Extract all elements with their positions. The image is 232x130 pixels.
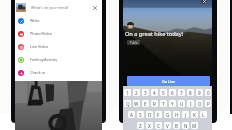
button[interactable]: H	[173, 111, 180, 118]
staticText: S	[139, 112, 142, 118]
staticText: B	[175, 123, 178, 129]
button[interactable]: 4	[151, 89, 158, 96]
staticText: H	[175, 112, 179, 118]
button[interactable]: P	[205, 100, 211, 107]
button[interactable]: V	[164, 122, 171, 129]
button[interactable]: Close	[89, 2, 100, 13]
button[interactable]: 3	[142, 89, 149, 96]
staticText: 1	[126, 90, 129, 96]
button[interactable]: G	[164, 111, 171, 118]
button[interactable]: 7	[178, 89, 185, 96]
staticText: D	[148, 112, 152, 118]
button[interactable]: S	[137, 111, 144, 118]
button[interactable]: N	[182, 122, 189, 129]
staticText: Q	[126, 101, 130, 107]
button[interactable]: 8	[187, 89, 194, 96]
staticText: Check in	[30, 70, 46, 75]
button[interactable]: 9	[196, 89, 203, 96]
button[interactable]: What's on your mind?	[15, 0, 102, 14]
staticText: Go Live	[162, 79, 176, 84]
button[interactable]: Check in	[15, 66, 102, 79]
button[interactable]: O	[196, 100, 203, 107]
staticText: L	[202, 112, 205, 118]
button[interactable]: 2	[133, 89, 140, 96]
button[interactable]: 1	[124, 89, 131, 96]
button[interactable]: Write	[15, 14, 102, 27]
button[interactable]: L	[200, 111, 207, 118]
button[interactable]: Public	[127, 40, 140, 45]
staticText: Y	[171, 101, 174, 107]
button[interactable]: 6	[169, 89, 176, 96]
staticText: What's on your mind?	[31, 5, 69, 10]
button[interactable]: I	[187, 100, 194, 107]
staticText: F	[157, 112, 160, 118]
button[interactable]: Feeling/Activity	[15, 53, 102, 66]
button[interactable]: D	[146, 111, 153, 118]
staticText: 6	[171, 90, 174, 96]
button[interactable]: J	[182, 111, 189, 118]
button[interactable]: Live Video	[15, 40, 102, 53]
button[interactable]: U	[178, 100, 185, 107]
staticText: K	[193, 112, 196, 118]
staticText: M	[192, 123, 197, 129]
button[interactable]: E	[142, 100, 149, 107]
staticText: 3	[144, 90, 147, 96]
staticText: P	[207, 101, 210, 107]
staticText: 5	[162, 90, 165, 96]
staticText: V	[166, 123, 169, 129]
staticText: E	[144, 101, 147, 107]
button[interactable]: Close	[201, 0, 207, 4]
staticText: X	[148, 123, 151, 129]
button[interactable]: A	[128, 111, 135, 118]
button[interactable]: 5	[160, 89, 167, 96]
staticText: Write	[30, 18, 40, 23]
button[interactable]: W	[133, 100, 140, 107]
staticText: Z	[139, 123, 142, 129]
staticText: O	[198, 101, 202, 107]
staticText: J	[185, 112, 187, 118]
button[interactable]: X	[146, 122, 153, 129]
staticText: N	[184, 123, 188, 129]
button[interactable]: Photo/Video	[15, 27, 102, 40]
button[interactable]: F	[155, 111, 162, 118]
staticText: Public	[130, 41, 138, 45]
staticText: Feeling/Activity	[30, 57, 58, 62]
staticText: C	[157, 123, 160, 129]
button[interactable]: T	[160, 100, 167, 107]
button[interactable]: M	[191, 122, 198, 129]
staticText: A	[130, 112, 133, 118]
button[interactable]: B	[173, 122, 180, 129]
button[interactable]: Q	[124, 100, 131, 107]
staticText: 2	[135, 90, 138, 96]
staticText: R	[153, 101, 156, 107]
button[interactable]: Go Live	[127, 76, 210, 86]
staticText: 4	[153, 90, 156, 96]
staticText: T	[162, 101, 165, 107]
staticText: Photo/Video	[30, 31, 53, 36]
staticText: Live Video	[30, 44, 49, 49]
staticText: I	[190, 101, 192, 107]
button[interactable]: C	[155, 122, 162, 129]
staticText: 0	[207, 90, 210, 96]
button[interactable]: Z	[137, 122, 144, 129]
staticText: 8	[189, 90, 192, 96]
staticText: W	[134, 101, 139, 107]
staticText: 9	[198, 90, 201, 96]
button[interactable]: 0	[205, 89, 211, 96]
staticText: On a great hike today!	[125, 30, 184, 38]
staticText: G	[166, 112, 170, 118]
staticText: U	[180, 101, 184, 107]
button[interactable]: K	[191, 111, 198, 118]
button[interactable]: Y	[169, 100, 176, 107]
staticText: 7	[180, 90, 183, 96]
button[interactable]: R	[151, 100, 158, 107]
